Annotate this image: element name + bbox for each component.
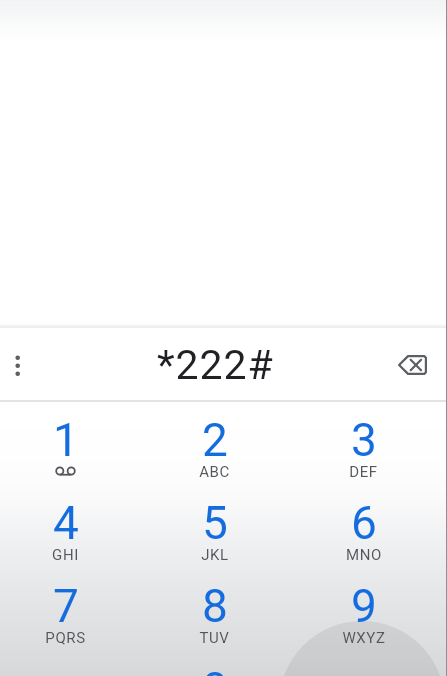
staticText: TUV xyxy=(199,629,230,647)
button[interactable]: 7 xyxy=(0,568,140,651)
staticText: GHI xyxy=(52,546,79,564)
staticText: 8 xyxy=(202,579,228,633)
staticText: MNO xyxy=(346,546,382,564)
staticText: PQRS xyxy=(45,629,86,647)
staticText: 6 xyxy=(351,496,377,550)
staticText: WXYZ xyxy=(342,629,386,647)
button[interactable]: 8 xyxy=(140,568,289,651)
button[interactable]: 4 xyxy=(0,485,140,568)
button[interactable]: 1 xyxy=(0,402,140,485)
staticText: 9 xyxy=(351,579,377,633)
staticText: 4 xyxy=(53,496,79,550)
button[interactable]: 2 xyxy=(140,402,289,485)
staticText: 0 xyxy=(202,662,228,676)
button[interactable]: 5 xyxy=(140,485,289,568)
staticText: *222# xyxy=(157,341,274,389)
staticText: 7 xyxy=(53,579,79,633)
button[interactable]: 6 xyxy=(289,485,438,568)
button[interactable]: # xyxy=(289,651,438,676)
button[interactable]: 3 xyxy=(289,402,438,485)
button[interactable]: More options xyxy=(0,343,39,387)
staticText: 2 xyxy=(202,413,228,467)
button[interactable]: 0 xyxy=(140,651,289,676)
staticText: ABC xyxy=(199,463,230,481)
staticText: 1 xyxy=(53,413,79,467)
button[interactable]: Backspace xyxy=(390,343,434,387)
staticText: 5 xyxy=(202,496,228,550)
staticText: 3 xyxy=(351,413,377,467)
button[interactable]: 9 xyxy=(289,568,438,651)
staticText: JKL xyxy=(201,546,229,564)
staticText: DEF xyxy=(349,463,378,481)
